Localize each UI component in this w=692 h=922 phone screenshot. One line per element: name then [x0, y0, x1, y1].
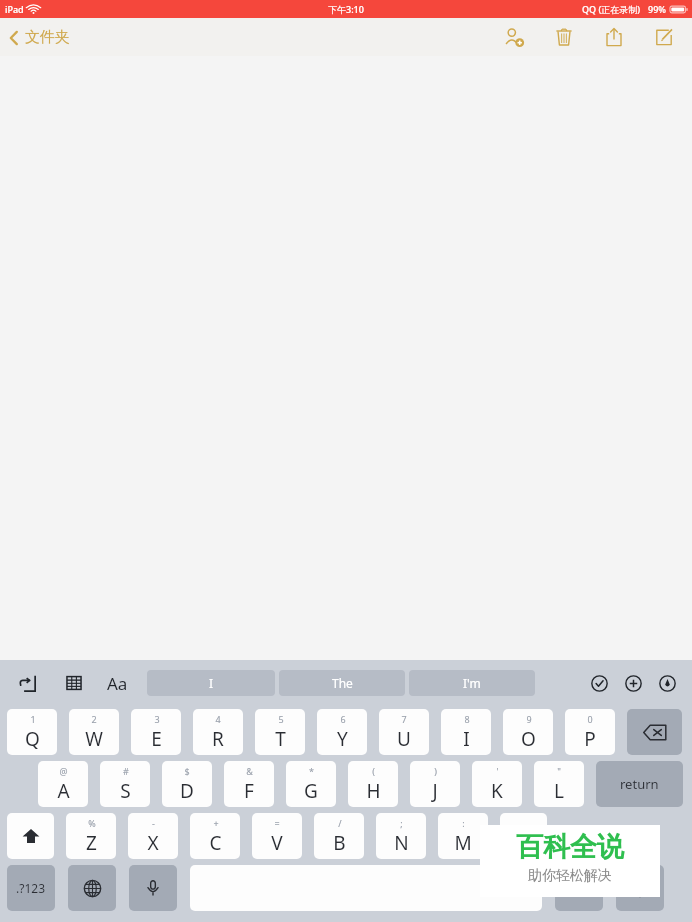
button[interactable]: I'm [409, 670, 535, 696]
button[interactable]: ' [472, 761, 522, 807]
button[interactable]: ; [376, 813, 426, 859]
button[interactable]: 文件夹 [9, 28, 70, 47]
staticText: ' [496, 765, 499, 777]
staticText: V [271, 830, 283, 856]
staticText: S [120, 778, 131, 804]
staticText: D [180, 778, 194, 804]
staticText: L [554, 778, 564, 804]
button[interactable]: 3 [131, 709, 181, 755]
button[interactable]: Dictation [129, 865, 177, 911]
button[interactable]: % [66, 813, 116, 859]
button[interactable]: Numbers [7, 865, 55, 911]
staticText: X [147, 830, 159, 856]
staticText: B [333, 830, 346, 856]
button[interactable]: Draw [654, 670, 680, 696]
staticText: 1 [30, 713, 36, 725]
staticText: 7 [401, 713, 407, 725]
button[interactable]: 2 [69, 709, 119, 755]
button[interactable]: Backspace [627, 709, 682, 755]
button[interactable]: & [224, 761, 274, 807]
button[interactable]: / [314, 813, 364, 859]
button[interactable]: * [286, 761, 336, 807]
button[interactable]: Space [190, 865, 542, 911]
staticText: + [213, 817, 219, 829]
staticText: ( [372, 765, 375, 777]
staticText: " [557, 765, 561, 777]
button[interactable]: Hide keyboard [616, 865, 664, 911]
button[interactable]: : [438, 813, 488, 859]
staticText: .?123 [16, 880, 46, 896]
button[interactable]: Text format [103, 669, 131, 697]
button[interactable]: Insert [620, 670, 646, 696]
button[interactable]: # [100, 761, 150, 807]
staticText: ) [434, 765, 437, 777]
staticText: 下午3:10 [328, 3, 364, 15]
button[interactable]: $ [162, 761, 212, 807]
staticText: 9 [526, 713, 532, 725]
button[interactable]: Table [61, 670, 87, 696]
staticText: T [275, 726, 286, 752]
button[interactable]: = [252, 813, 302, 859]
staticText: W [85, 726, 103, 752]
button[interactable]: Numbers right [555, 865, 603, 911]
staticText: / [338, 817, 342, 829]
staticText: 文件夹 [25, 28, 70, 47]
button[interactable]: 7 [379, 709, 429, 755]
button[interactable]: Confirm [586, 670, 612, 696]
staticText: N [394, 830, 409, 856]
staticText: P [584, 726, 596, 752]
button[interactable]: 1 [7, 709, 57, 755]
button[interactable]: 0 [565, 709, 615, 755]
staticText: 6 [340, 713, 346, 725]
staticText: $ [184, 765, 190, 777]
button[interactable]: Undo [14, 670, 40, 696]
staticText: 8 [464, 713, 470, 725]
staticText: C [209, 830, 222, 856]
staticText: I [209, 675, 214, 691]
button[interactable]: 8 [441, 709, 491, 755]
button[interactable]: @ [38, 761, 88, 807]
staticText: return [620, 775, 659, 793]
button[interactable]: 4 [193, 709, 243, 755]
staticText: Y [337, 726, 348, 752]
staticText: Q [25, 726, 40, 752]
button[interactable]: ) [410, 761, 460, 807]
staticText: E [151, 726, 162, 752]
staticText: I'm [463, 675, 481, 691]
staticText: = [274, 817, 280, 829]
staticText: iPad [5, 3, 24, 15]
button[interactable]: The [279, 670, 405, 696]
button[interactable]: Shift right [500, 813, 547, 859]
button[interactable]: 9 [503, 709, 553, 755]
staticText: F [244, 778, 254, 804]
button[interactable]: ( [348, 761, 398, 807]
staticText: U [397, 726, 411, 752]
staticText: Z [86, 830, 97, 856]
staticText: K [491, 778, 503, 804]
button[interactable]: 6 [317, 709, 367, 755]
button[interactable]: Return [596, 761, 683, 807]
staticText: 2 [91, 713, 97, 725]
staticText: 3 [154, 713, 160, 725]
staticText: Aa [107, 672, 128, 695]
staticText: QQ (正在录制) [582, 3, 641, 15]
button[interactable]: 5 [255, 709, 305, 755]
staticText: # [123, 765, 129, 777]
button[interactable]: Change keyboard [68, 865, 116, 911]
button[interactable]: Share [600, 23, 628, 51]
button[interactable]: " [534, 761, 584, 807]
staticText: The [332, 675, 353, 691]
staticText: A [57, 778, 70, 804]
staticText: * [309, 765, 314, 777]
button[interactable]: I [147, 670, 275, 696]
staticText: I [463, 726, 470, 752]
staticText: 5 [278, 713, 284, 725]
button[interactable]: Delete [550, 23, 578, 51]
staticText: J [432, 778, 438, 804]
button[interactable]: + [190, 813, 240, 859]
button[interactable]: Shift [7, 813, 54, 859]
button[interactable]: Compose [650, 23, 678, 51]
staticText: H [366, 778, 381, 804]
button[interactable]: Add person [500, 23, 528, 51]
button[interactable]: - [128, 813, 178, 859]
